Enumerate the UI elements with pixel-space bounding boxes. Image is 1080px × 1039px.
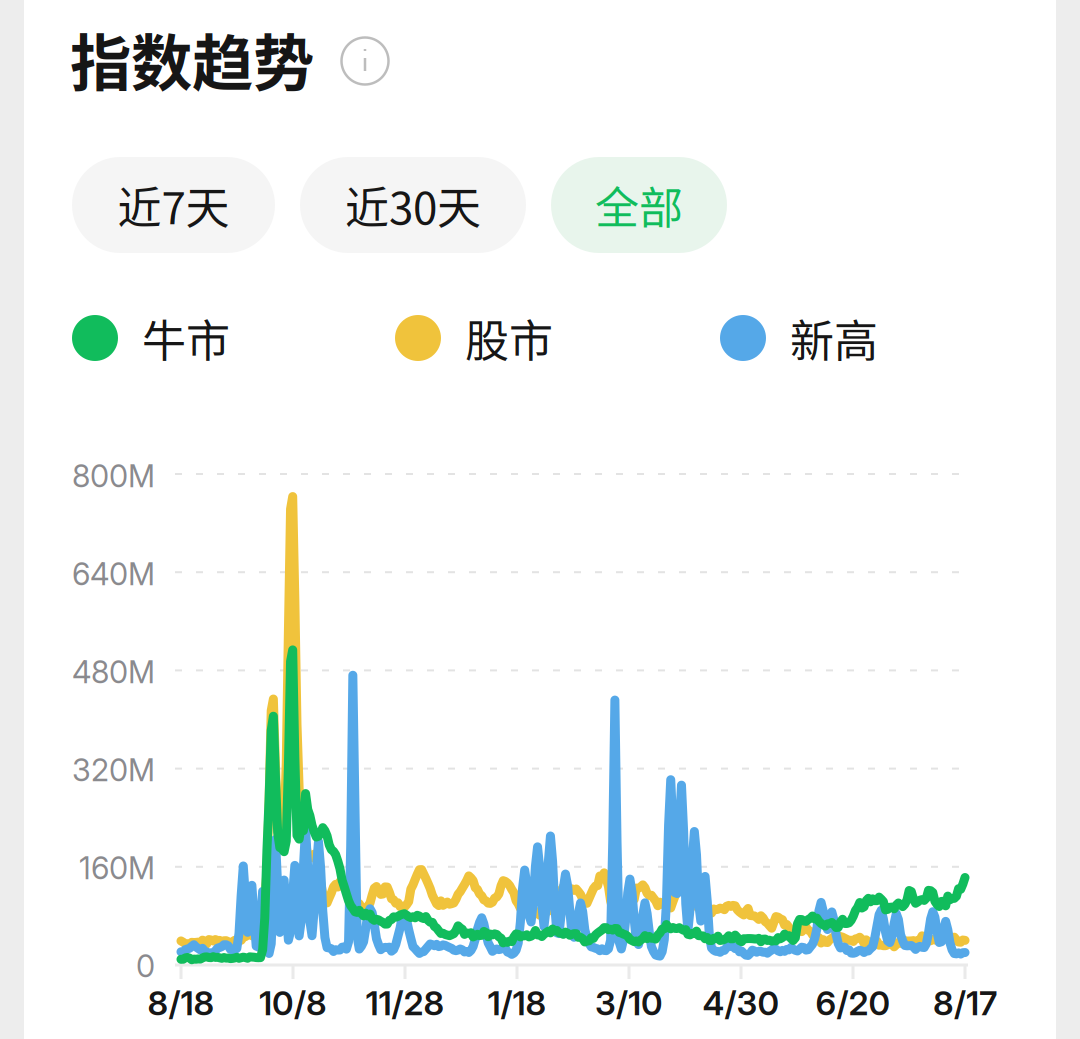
- staticText: 股市: [465, 306, 553, 370]
- button[interactable]: 近30天: [300, 157, 526, 253]
- staticText: 3/10: [595, 983, 663, 1023]
- staticText: 指数趋势: [70, 15, 314, 103]
- button[interactable]: 全部: [551, 157, 727, 253]
- staticText: 320M: [72, 751, 155, 788]
- staticText: 全部: [595, 173, 683, 237]
- staticText: 4/30: [702, 983, 779, 1023]
- staticText: 11/28: [365, 983, 444, 1023]
- button[interactable]: About index trend: [340, 36, 390, 86]
- staticText: 1/18: [487, 983, 546, 1023]
- staticText: 8/18: [147, 983, 214, 1023]
- staticText: 800M: [72, 457, 155, 494]
- staticText: 0: [136, 947, 155, 984]
- staticText: 640M: [72, 555, 155, 592]
- staticText: 10/8: [259, 983, 327, 1023]
- staticText: 近7天: [117, 173, 229, 237]
- staticText: 牛市: [142, 306, 230, 370]
- staticText: 160M: [79, 849, 155, 886]
- staticText: 480M: [72, 653, 155, 690]
- staticText: 近30天: [345, 173, 481, 237]
- button[interactable]: 近7天: [72, 157, 275, 253]
- staticText: 新高: [790, 306, 878, 370]
- staticText: 8/17: [933, 983, 997, 1023]
- staticText: 6/20: [815, 983, 890, 1023]
